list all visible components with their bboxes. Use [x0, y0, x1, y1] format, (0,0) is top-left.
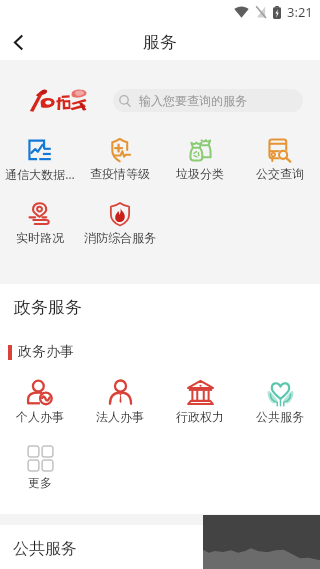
button[interactable]: 公交查询: [240, 126, 320, 190]
staticText: 公共服务: [13, 539, 77, 559]
button[interactable]: 个人办事: [0, 366, 80, 432]
button[interactable]: 垃圾分类: [160, 126, 240, 190]
button[interactable]: 行政权力: [160, 366, 240, 432]
button[interactable]: 实时路况: [0, 190, 80, 254]
staticText: 服务: [143, 32, 177, 53]
button[interactable]: 输入您要查询的服务: [113, 89, 303, 112]
staticText: 3:21: [287, 3, 313, 21]
staticText: 行政权力: [176, 409, 224, 424]
staticText: 查疫情等级: [90, 166, 150, 181]
staticText: 公共服务: [256, 409, 304, 424]
staticText: 法人办事: [96, 409, 144, 424]
staticText: 垃圾分类: [176, 166, 224, 181]
button[interactable]: 法人办事: [80, 366, 160, 432]
staticText: 通信大数据…: [5, 166, 75, 182]
staticText: 输入您要查询的服务: [139, 93, 247, 108]
button[interactable]: 通信大数据…: [0, 126, 80, 190]
button[interactable]: 查疫情等级: [80, 126, 160, 190]
staticText: 消防综合服务: [84, 230, 156, 245]
staticText: 实时路况: [16, 230, 64, 245]
staticText: 政务办事: [18, 343, 74, 361]
button[interactable]: 公共服务: [240, 366, 320, 432]
staticText: 政务服务: [14, 297, 82, 318]
staticText: 个人办事: [16, 409, 64, 424]
staticText: 更多: [28, 475, 52, 490]
button[interactable]: 更多: [0, 432, 80, 498]
staticText: 公交查询: [256, 166, 304, 181]
button[interactable]: 消防综合服务: [80, 190, 160, 254]
button[interactable]: Back: [0, 24, 36, 60]
other: Wi-Fi: [234, 6, 249, 18]
button[interactable]: 石榴云: [29, 88, 87, 112]
